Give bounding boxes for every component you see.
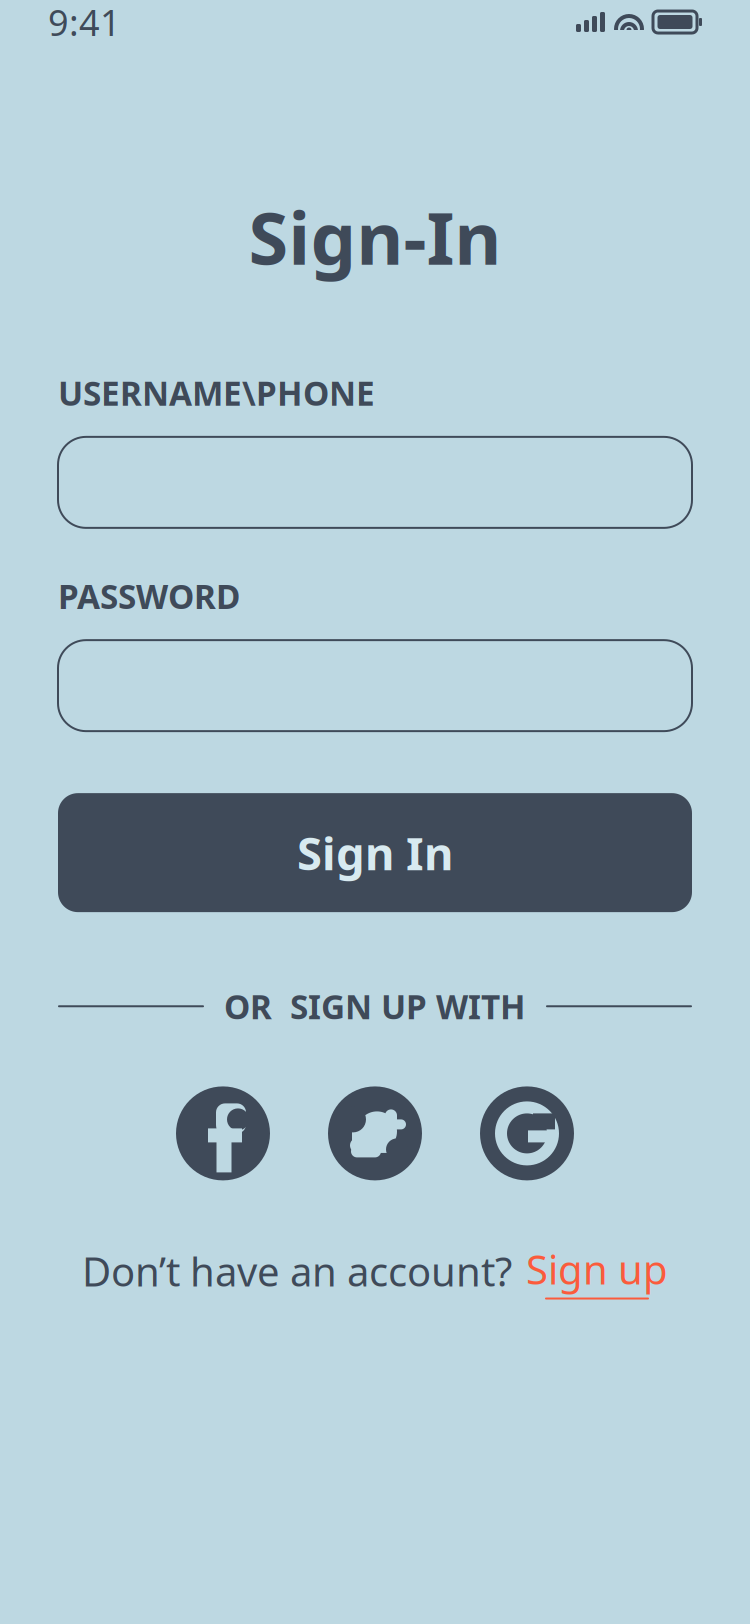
staticText: Sign-In — [248, 189, 501, 285]
staticText: Sign up — [526, 1242, 668, 1295]
staticText: 9:41 — [48, 0, 121, 46]
staticText: PASSWORD — [58, 574, 240, 618]
button[interactable]: Sign In — [58, 793, 692, 912]
button[interactable]: Sign up with Facebook — [176, 1086, 270, 1180]
button[interactable]: Sign up with Google — [480, 1086, 574, 1180]
button[interactable]: Sign up with Twitter — [328, 1086, 422, 1180]
staticText: Sign In — [297, 822, 453, 883]
staticText: USERNAME\PHONE — [58, 371, 375, 415]
button[interactable]: Sign up — [526, 1242, 668, 1299]
staticText: Don’t have an account? — [82, 1244, 512, 1297]
staticText: OR SIGN UP WITH — [224, 984, 526, 1028]
